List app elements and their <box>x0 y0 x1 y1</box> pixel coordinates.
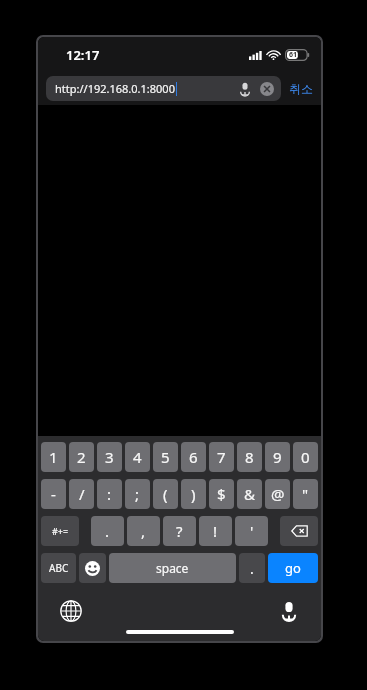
button[interactable]: ; <box>125 479 150 509</box>
staticText: 0 <box>301 447 310 467</box>
button[interactable]: ! <box>199 516 232 546</box>
button[interactable]: 2 <box>69 442 94 472</box>
button[interactable]: . <box>239 553 265 583</box>
button[interactable]: " <box>293 479 318 509</box>
staticText: ) <box>191 484 196 504</box>
staticText: go <box>285 559 301 577</box>
staticText: space <box>156 560 189 576</box>
staticText: 2 <box>77 447 86 467</box>
button[interactable]: ABC <box>41 553 76 583</box>
staticText: 7 <box>217 447 226 467</box>
button[interactable]: http://192.168.0.1:8000 <box>46 76 281 101</box>
button[interactable]: : <box>97 479 122 509</box>
button[interactable]: Clear text <box>260 82 274 96</box>
button[interactable]: ( <box>153 479 178 509</box>
button[interactable]: 9 <box>265 442 290 472</box>
staticText: & <box>244 484 255 504</box>
staticText: 6 <box>189 447 198 467</box>
button[interactable]: Dictation <box>279 601 299 621</box>
staticText: : <box>107 484 112 504</box>
staticText: 12:17 <box>66 46 100 64</box>
button[interactable]: space <box>109 553 236 583</box>
staticText: , <box>141 521 146 541</box>
button[interactable]: 8 <box>237 442 262 472</box>
button[interactable]: / <box>69 479 94 509</box>
button[interactable]: ' <box>235 516 268 546</box>
button[interactable]: 3 <box>97 442 122 472</box>
button[interactable]: ? <box>163 516 196 546</box>
button[interactable]: $ <box>209 479 234 509</box>
staticText: - <box>51 484 56 504</box>
staticText: 8 <box>245 447 254 467</box>
staticText: 9 <box>273 447 282 467</box>
button[interactable]: 1 <box>41 442 66 472</box>
staticText: @ <box>271 484 285 504</box>
button[interactable]: go <box>268 553 318 583</box>
button[interactable]: 7 <box>209 442 234 472</box>
button[interactable]: Backspace <box>280 516 318 546</box>
staticText: ! <box>213 521 218 541</box>
staticText: ' <box>250 521 254 541</box>
button[interactable]: Change keyboard language <box>60 600 82 622</box>
staticText: 3 <box>105 447 114 467</box>
button[interactable]: . <box>91 516 124 546</box>
staticText: 4 <box>133 447 142 467</box>
button[interactable]: Emoji keyboard <box>79 553 106 583</box>
button[interactable]: & <box>237 479 262 509</box>
staticText: $ <box>217 484 226 504</box>
staticText: 61 <box>289 50 298 60</box>
staticText: 취소 <box>289 81 313 96</box>
staticText: http://192.168.0.1:8000 <box>55 81 175 96</box>
staticText: " <box>302 484 309 504</box>
staticText: ABC <box>49 561 69 575</box>
button[interactable]: Voice search <box>238 82 252 96</box>
button[interactable]: 취소 <box>287 77 315 100</box>
staticText: . <box>250 559 254 578</box>
button[interactable]: 6 <box>181 442 206 472</box>
staticText: 5 <box>161 447 170 467</box>
button[interactable]: 0 <box>293 442 318 472</box>
button[interactable]: 5 <box>153 442 178 472</box>
button[interactable]: 4 <box>125 442 150 472</box>
staticText: ? <box>176 521 183 541</box>
button[interactable]: #+= <box>41 516 79 546</box>
staticText: . <box>105 521 110 541</box>
staticText: #+= <box>52 525 69 537</box>
staticText: ; <box>135 484 140 504</box>
staticText: / <box>79 484 85 504</box>
button[interactable]: ) <box>181 479 206 509</box>
button[interactable]: - <box>41 479 66 509</box>
button[interactable]: @ <box>265 479 290 509</box>
staticText: ( <box>163 484 168 504</box>
button[interactable]: , <box>127 516 160 546</box>
staticText: 1 <box>49 447 58 467</box>
